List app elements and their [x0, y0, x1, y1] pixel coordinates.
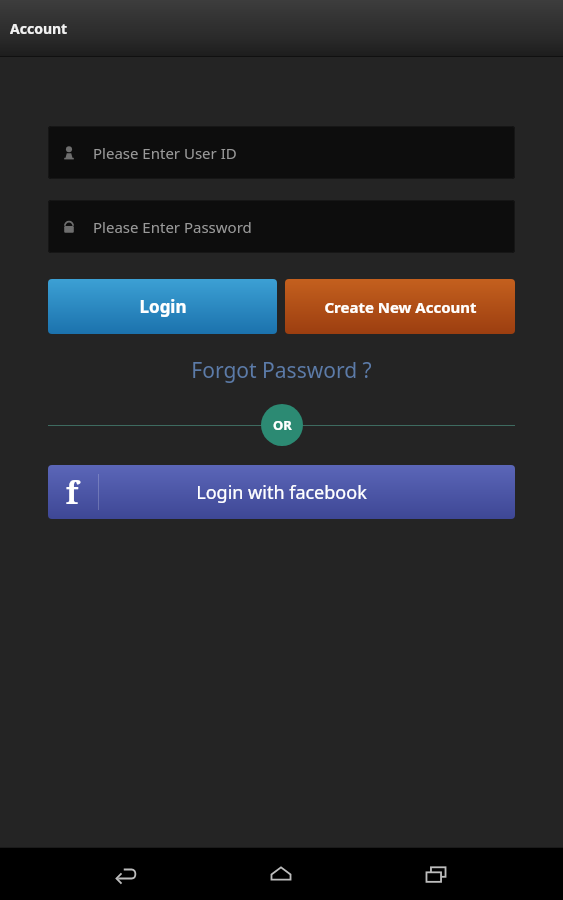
- button[interactable]: f: [48, 465, 515, 519]
- button[interactable]: Home: [253, 850, 309, 898]
- staticText: Account: [10, 19, 68, 38]
- staticText: OR: [273, 416, 292, 434]
- button[interactable]: Login: [48, 279, 277, 334]
- staticText: Please Enter Password: [93, 217, 252, 237]
- staticText: Login: [139, 295, 187, 318]
- button[interactable]: Create New Account: [285, 279, 515, 334]
- button[interactable]: Forgot Password ?: [48, 352, 515, 389]
- button[interactable]: Please Enter User ID: [48, 126, 515, 179]
- staticText: Create New Account: [324, 297, 477, 317]
- button[interactable]: Back: [98, 850, 154, 898]
- staticText: Please Enter User ID: [93, 143, 237, 163]
- button[interactable]: Recent apps: [408, 850, 464, 898]
- staticText: Login with facebook: [196, 480, 367, 505]
- staticText: Forgot Password ?: [191, 356, 372, 385]
- button[interactable]: Please Enter Password: [48, 200, 515, 253]
- staticText: f: [66, 472, 79, 513]
